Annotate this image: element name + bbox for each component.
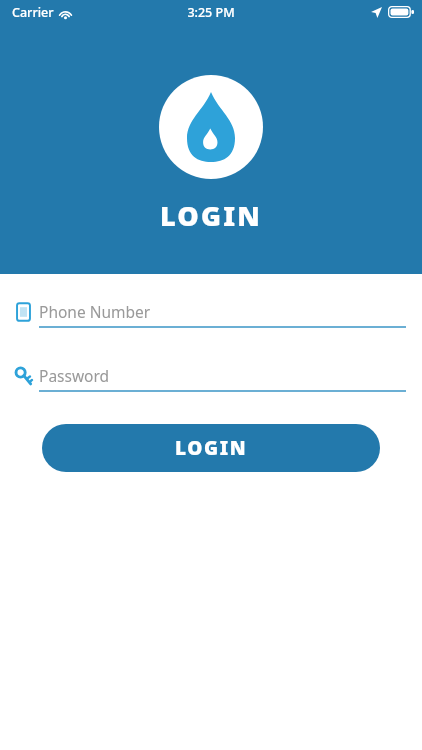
staticText: Carrier	[12, 4, 54, 21]
staticText: Phone Number	[39, 301, 151, 322]
staticText: Password	[39, 365, 110, 386]
staticText: LOGIN	[175, 435, 248, 461]
button[interactable]: Password	[0, 360, 422, 402]
button[interactable]: Phone number	[0, 296, 422, 338]
staticText: LOGIN	[160, 197, 263, 234]
other: Password	[15, 365, 32, 387]
staticText: 3:25 PM	[187, 4, 235, 21]
button[interactable]: LOGIN	[42, 424, 380, 472]
other: Phone number	[15, 301, 32, 323]
